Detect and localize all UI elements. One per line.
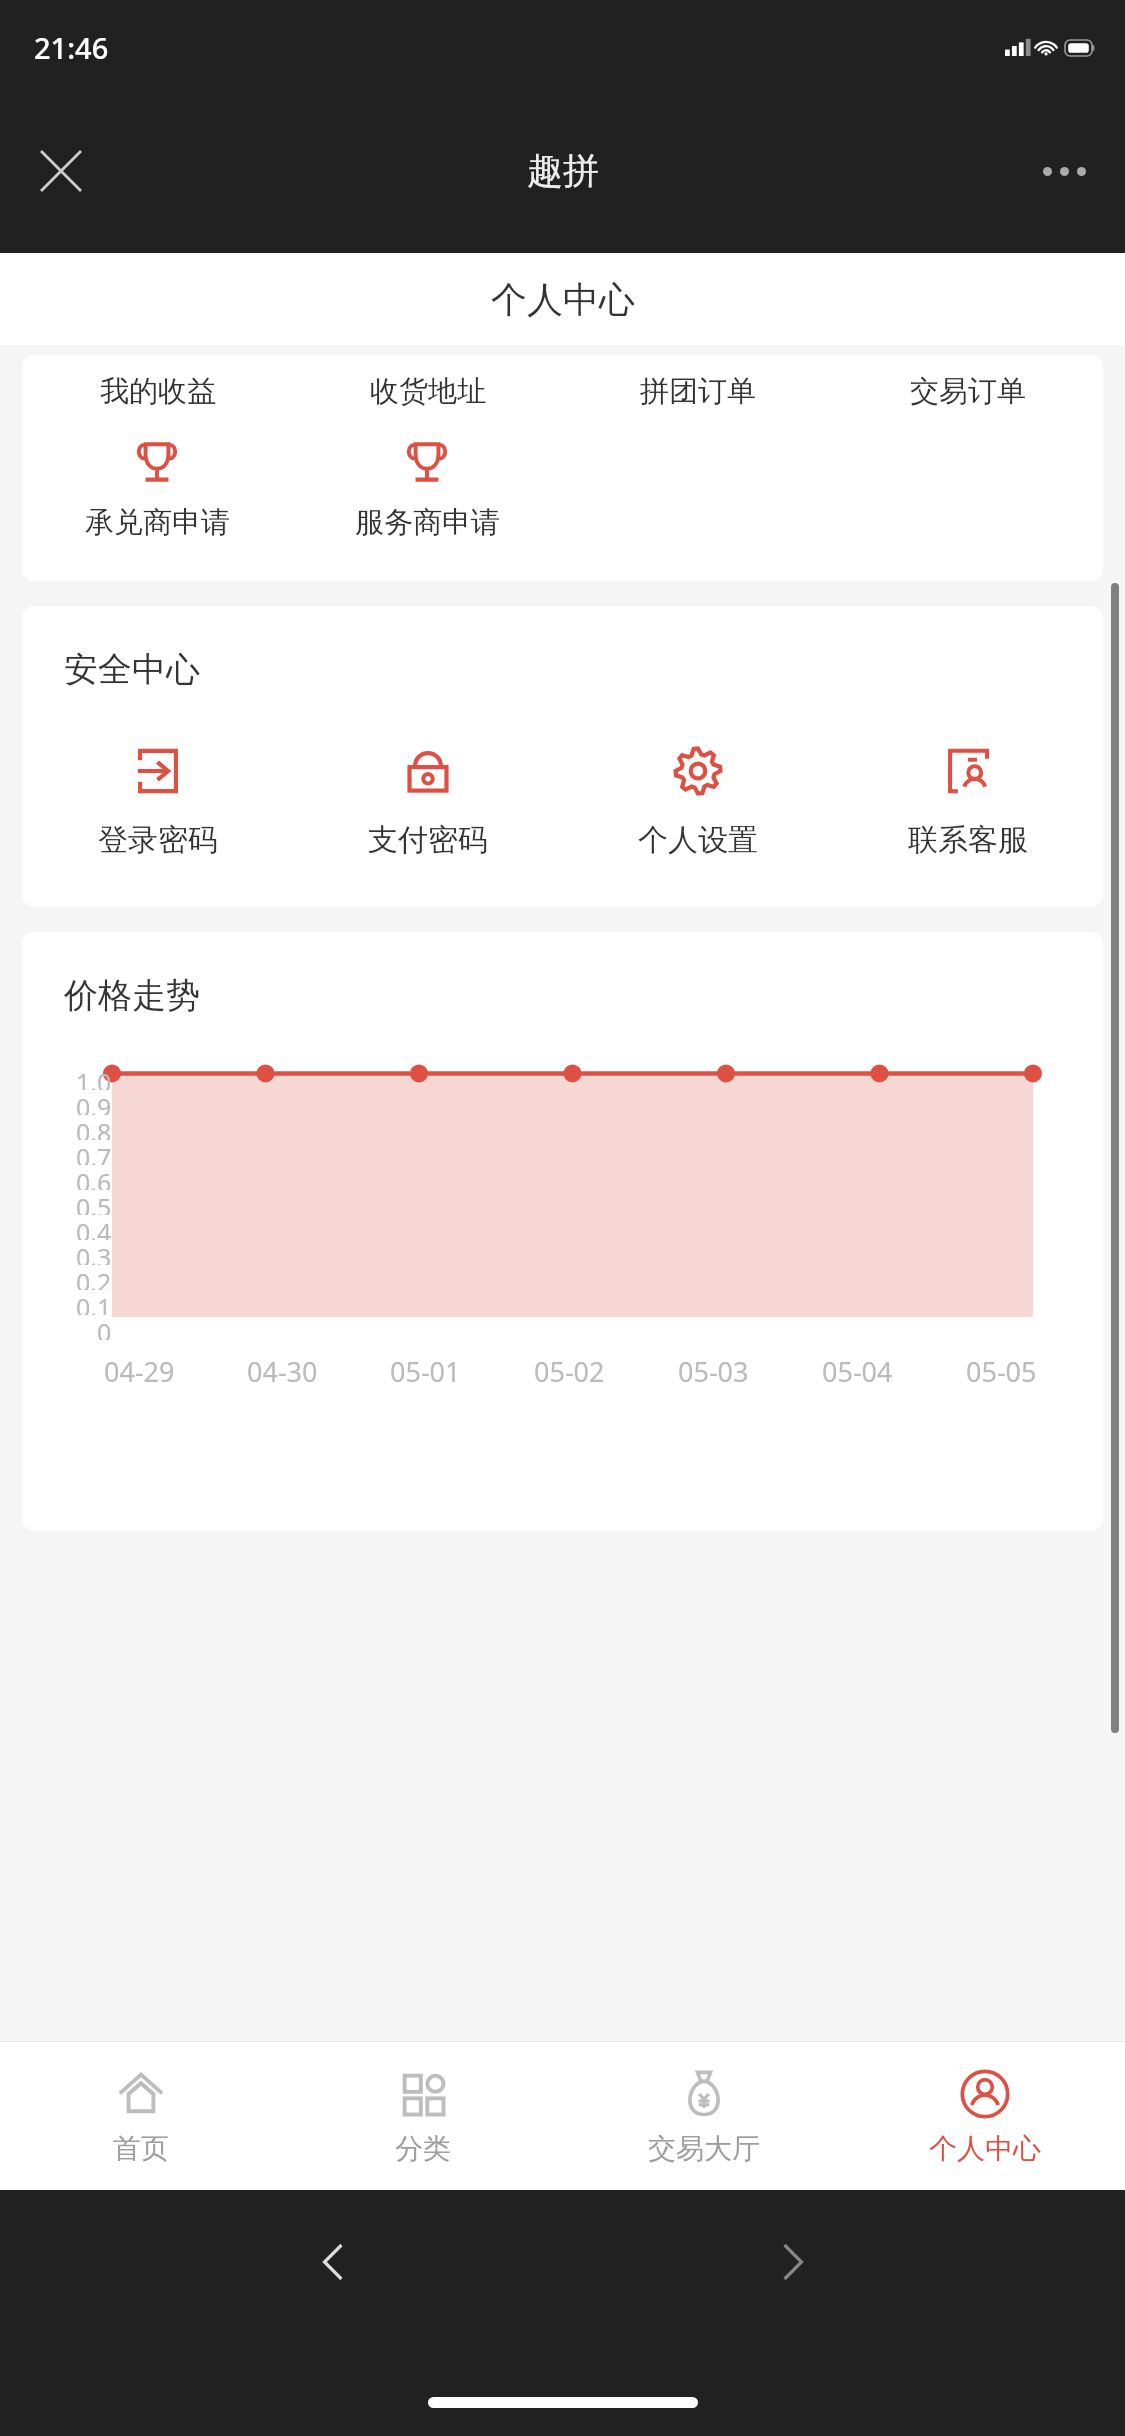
staticText: 个人中心 xyxy=(491,277,635,322)
button[interactable]: 服务商申请 xyxy=(292,436,562,541)
staticText: 04-30 xyxy=(247,1353,318,1390)
button[interactable]: 交易订单 xyxy=(833,373,1103,410)
staticText: 0.9 xyxy=(76,1090,112,1115)
staticText: 安全中心 xyxy=(64,648,200,691)
staticText: 交易大厅 xyxy=(648,2131,760,2166)
staticText: 0.5 xyxy=(76,1190,112,1215)
staticText: 0.4 xyxy=(76,1215,112,1240)
staticText: 0.8 xyxy=(76,1115,112,1140)
button[interactable]: 我的收益 xyxy=(22,373,293,410)
staticText: 分类 xyxy=(395,2131,451,2166)
button[interactable]: Back xyxy=(304,2232,364,2292)
staticText: 05-04 xyxy=(822,1353,893,1390)
staticText: 登录密码 xyxy=(98,821,218,859)
staticText: 承兑商申请 xyxy=(85,504,230,541)
staticText: 0.3 xyxy=(76,1240,112,1265)
button[interactable]: Close xyxy=(16,126,106,216)
button[interactable]: 承兑商申请 xyxy=(22,436,292,541)
button[interactable]: 登录密码 xyxy=(22,743,293,859)
staticText: 个人设置 xyxy=(638,821,758,859)
button[interactable]: 个人中心 xyxy=(844,2042,1125,2190)
staticText: 05-01 xyxy=(390,1353,461,1390)
staticText: 21:46 xyxy=(34,28,109,67)
staticText: 价格走势 xyxy=(64,974,200,1017)
staticText: 拼团订单 xyxy=(640,373,756,410)
button[interactable]: 个人设置 xyxy=(563,743,833,859)
staticText: 收货地址 xyxy=(370,373,486,410)
staticText: 我的收益 xyxy=(100,373,216,410)
staticText: 0 xyxy=(97,1315,112,1340)
staticText: 0.1 xyxy=(76,1290,112,1315)
button[interactable]: Forward xyxy=(762,2232,822,2292)
button[interactable]: 联系客服 xyxy=(833,743,1103,859)
staticText: 0.7 xyxy=(76,1140,112,1165)
button[interactable]: 拼团订单 xyxy=(563,373,833,410)
button[interactable]: 分类 xyxy=(282,2042,563,2190)
button[interactable]: 交易大厅 xyxy=(563,2042,844,2190)
staticText: 0.2 xyxy=(76,1265,112,1290)
staticText: 联系客服 xyxy=(908,821,1028,859)
staticText: 05-02 xyxy=(534,1353,605,1390)
staticText: 05-05 xyxy=(966,1353,1037,1390)
staticText: 交易订单 xyxy=(910,373,1026,410)
staticText: 首页 xyxy=(113,2131,169,2166)
staticText: 支付密码 xyxy=(368,821,488,859)
staticText: 趣拼 xyxy=(527,148,599,193)
staticText: 05-03 xyxy=(678,1353,749,1390)
staticText: 1.0 xyxy=(76,1065,112,1090)
button[interactable]: 支付密码 xyxy=(293,743,563,859)
button[interactable]: More options xyxy=(1019,126,1109,216)
staticText: 0.6 xyxy=(76,1165,112,1190)
button[interactable]: 收货地址 xyxy=(293,373,563,410)
button[interactable]: 首页 xyxy=(0,2042,282,2190)
staticText: 个人中心 xyxy=(929,2131,1041,2166)
staticText: 服务商申请 xyxy=(355,504,500,541)
staticText: 04-29 xyxy=(104,1353,175,1390)
